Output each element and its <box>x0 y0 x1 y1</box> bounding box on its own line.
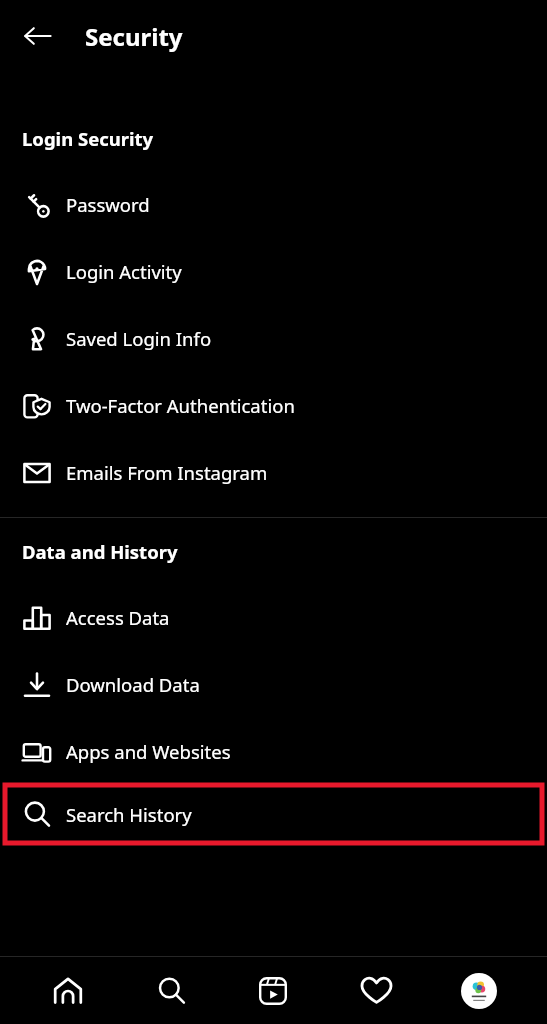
button[interactable]: Activity <box>341 957 411 1024</box>
staticText: Apps and Websites <box>66 739 231 764</box>
staticText: Saved Login Info <box>66 326 212 351</box>
button[interactable]: Search <box>136 957 206 1024</box>
button[interactable]: Password <box>0 171 547 238</box>
button[interactable]: Download Data <box>0 651 547 718</box>
button[interactable]: Back <box>12 10 64 62</box>
staticText: Download Data <box>66 672 200 697</box>
button[interactable]: Login Activity <box>0 238 547 305</box>
staticText: Data and History <box>22 539 178 564</box>
button[interactable]: Apps and Websites <box>0 718 547 785</box>
button[interactable]: Saved Login Info <box>0 305 547 372</box>
button[interactable]: Emails From Instagram <box>0 439 547 506</box>
staticText: Login Security <box>22 126 154 151</box>
staticText: Two-Factor Authentication <box>66 393 295 418</box>
button[interactable]: Two-Factor Authentication <box>0 372 547 439</box>
staticText: Access Data <box>66 605 170 630</box>
staticText: Security <box>85 20 183 53</box>
button[interactable]: Reels <box>238 957 308 1024</box>
button[interactable]: Access Data <box>0 584 547 651</box>
button[interactable]: Search History <box>5 785 542 843</box>
button[interactable]: Profile <box>444 957 514 1024</box>
staticText: Login Activity <box>66 259 182 284</box>
staticText: Emails From Instagram <box>66 460 268 485</box>
button[interactable]: Home <box>33 957 103 1024</box>
staticText: Password <box>66 192 150 217</box>
staticText: Search History <box>66 802 192 827</box>
